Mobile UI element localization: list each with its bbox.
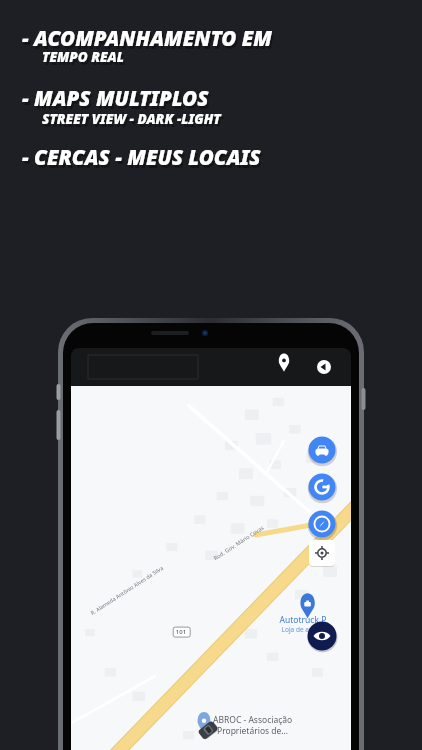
button[interactable]: Promotional screen bbox=[0, 0, 422, 750]
